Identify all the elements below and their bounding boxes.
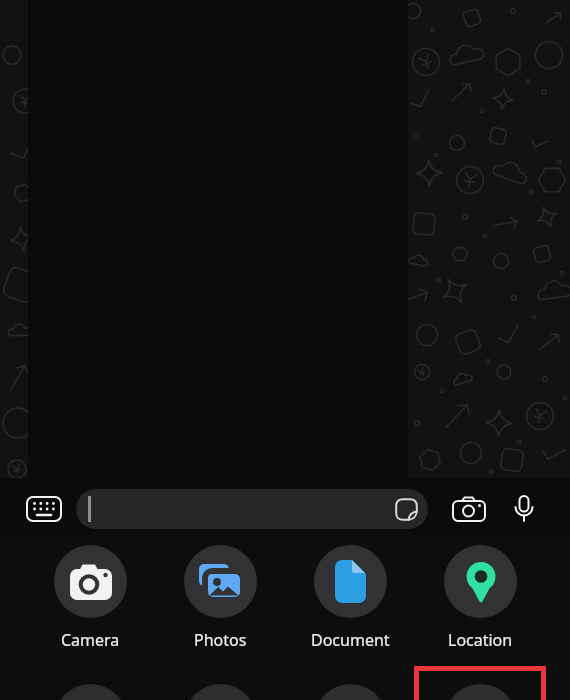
button[interactable]: [76, 489, 428, 529]
button[interactable]: Photos: [155, 545, 285, 651]
button[interactable]: Document: [285, 545, 415, 651]
staticText: Document: [311, 629, 390, 651]
staticText: Photos: [194, 629, 247, 651]
button[interactable]: [452, 495, 486, 523]
button[interactable]: [444, 684, 517, 700]
button[interactable]: Camera: [25, 545, 155, 651]
button[interactable]: [54, 684, 127, 700]
button[interactable]: [514, 495, 534, 523]
staticText: Location: [448, 629, 513, 651]
button[interactable]: [184, 684, 257, 700]
button[interactable]: [26, 494, 62, 524]
button[interactable]: Location: [415, 545, 545, 651]
staticText: Camera: [61, 629, 120, 651]
button[interactable]: [314, 684, 387, 700]
